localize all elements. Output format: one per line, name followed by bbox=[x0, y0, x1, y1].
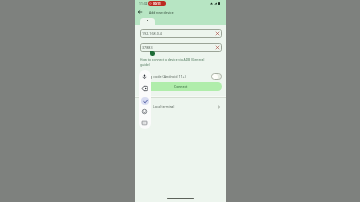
button[interactable]: Connect bbox=[140, 82, 222, 91]
staticText: Pairing code (Android 11+) bbox=[140, 74, 211, 79]
staticText: Local terminal bbox=[153, 105, 217, 109]
staticText: Add new device bbox=[149, 10, 174, 14]
button[interactable]: Backspace bbox=[141, 85, 148, 92]
button[interactable]: Done bbox=[141, 97, 149, 105]
staticText: 37883 bbox=[142, 45, 153, 50]
button[interactable]: Back bbox=[135, 7, 144, 16]
button[interactable]: 192.168.0.4 bbox=[140, 29, 222, 38]
button[interactable]: Local terminal bbox=[135, 101, 226, 112]
staticText: Connect bbox=[174, 84, 188, 89]
button[interactable]: Emoji bbox=[141, 108, 148, 115]
button[interactable]: Pairing code (Android 11+) bbox=[140, 72, 222, 80]
button[interactable]: Voice input bbox=[141, 73, 148, 80]
button[interactable]: Wireless tab bbox=[140, 18, 155, 26]
staticText: 192.168.0.4 bbox=[142, 31, 162, 36]
button[interactable]: Clear bbox=[216, 46, 219, 49]
button[interactable]: Screen recording bbox=[148, 1, 166, 6]
button[interactable]: Keyboard bbox=[141, 119, 148, 126]
staticText: How to connect a device via ADB (General… bbox=[140, 57, 210, 67]
button[interactable]: Clear bbox=[216, 32, 219, 35]
staticText: 11:32 bbox=[139, 1, 148, 5]
button[interactable]: 37883 bbox=[140, 43, 222, 52]
staticText: 00:11 bbox=[153, 2, 161, 6]
